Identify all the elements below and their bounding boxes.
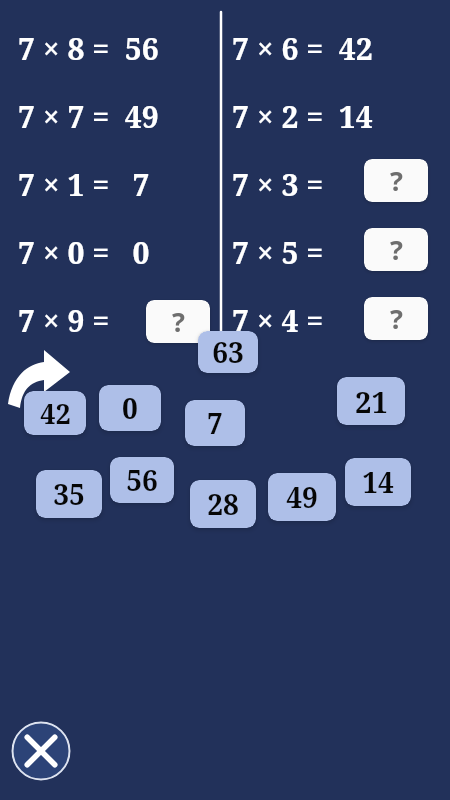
- staticText: 7 × 0 = 0: [18, 232, 150, 273]
- staticText: 28: [207, 485, 239, 523]
- staticText: 7 × 7 = 49: [18, 96, 159, 137]
- button[interactable]: ?: [146, 300, 210, 343]
- button[interactable]: 42: [24, 391, 86, 435]
- button[interactable]: 7: [185, 400, 245, 446]
- button[interactable]: 0: [99, 385, 161, 431]
- other: Drag pointer: [4, 348, 50, 394]
- staticText: 35: [53, 475, 85, 513]
- staticText: 21: [355, 382, 388, 421]
- staticText: 56: [126, 461, 158, 499]
- staticText: 0: [122, 389, 138, 427]
- staticText: 7 × 4 =: [232, 300, 331, 341]
- button[interactable]: ?: [364, 228, 428, 271]
- button[interactable]: 28: [190, 480, 256, 528]
- staticText: 7 × 3 =: [232, 164, 331, 205]
- staticText: 63: [212, 333, 244, 371]
- button[interactable]: ?: [364, 159, 428, 202]
- button[interactable]: 63: [198, 331, 258, 373]
- staticText: ?: [390, 231, 403, 268]
- staticText: 14: [362, 463, 394, 501]
- staticText: 7 × 8 = 56: [18, 28, 159, 69]
- staticText: ?: [390, 162, 403, 199]
- button[interactable]: 56: [110, 457, 174, 503]
- button[interactable]: Close: [11, 721, 71, 781]
- staticText: 7 × 2 = 14: [232, 96, 373, 137]
- button[interactable]: 14: [345, 458, 411, 506]
- button[interactable]: 35: [36, 470, 102, 518]
- staticText: 7 × 6 = 42: [232, 28, 373, 69]
- button[interactable]: ?: [364, 297, 428, 340]
- staticText: 49: [286, 478, 318, 516]
- staticText: ?: [172, 303, 185, 340]
- staticText: 7 × 5 =: [232, 232, 331, 273]
- staticText: 7: [207, 404, 223, 442]
- staticText: 42: [40, 395, 71, 432]
- staticText: ?: [390, 300, 403, 337]
- button[interactable]: 21: [337, 377, 405, 425]
- staticText: 7 × 9 =: [18, 300, 117, 341]
- button[interactable]: 49: [268, 473, 336, 521]
- staticText: 7 × 1 = 7: [18, 164, 150, 205]
